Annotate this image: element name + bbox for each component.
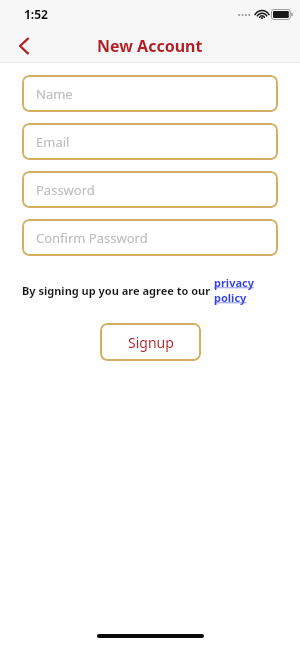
button[interactable]: Signup <box>100 323 201 361</box>
staticText: New Account <box>97 35 203 57</box>
button[interactable]: Email <box>22 123 278 160</box>
button[interactable]: Name <box>22 75 278 112</box>
button[interactable]: Back <box>8 30 40 62</box>
staticText: privacy policy <box>214 275 278 305</box>
staticText: Name <box>36 85 73 103</box>
staticText: Password <box>36 181 95 199</box>
staticText: By signing up you are agree to our <box>22 283 214 298</box>
staticText: 1:52 <box>24 6 48 22</box>
button[interactable]: Confirm Password <box>22 219 278 256</box>
button[interactable]: privacy policy <box>214 275 278 305</box>
staticText: Confirm Password <box>36 229 148 247</box>
staticText: Signup <box>128 333 174 352</box>
staticText: Email <box>36 133 70 151</box>
button[interactable]: Password <box>22 171 278 208</box>
